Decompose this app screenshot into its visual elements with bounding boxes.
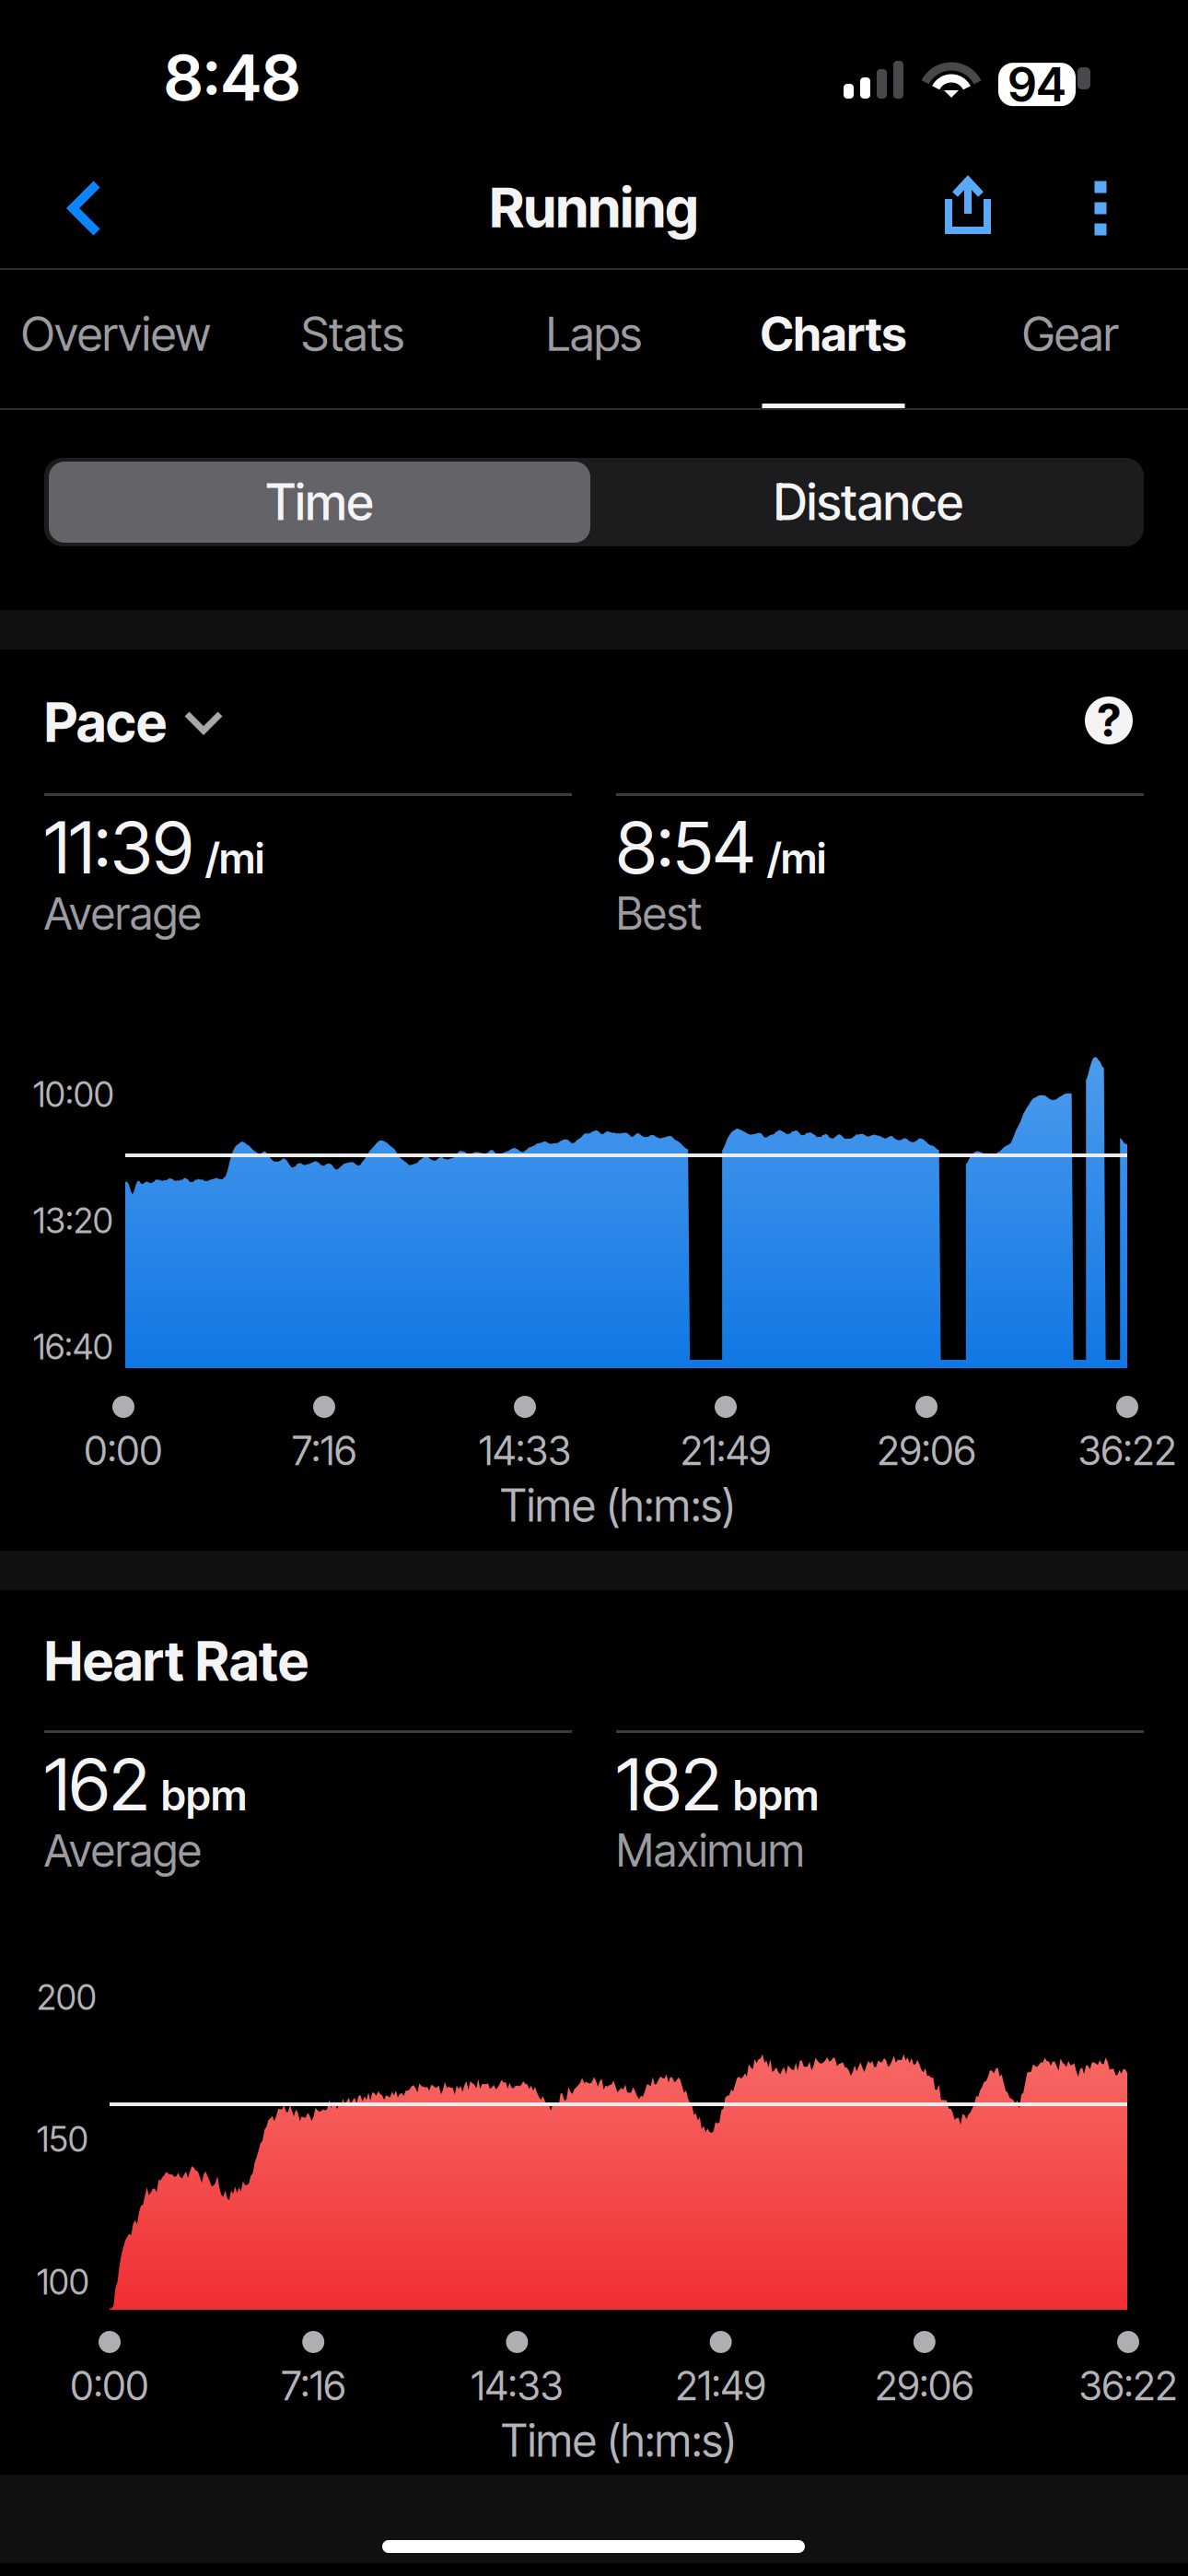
staticText: 150	[37, 2118, 88, 2160]
staticText: 10:00	[33, 1074, 114, 1115]
button[interactable]: About pace	[1085, 697, 1133, 744]
staticText: bpm	[733, 1770, 819, 1820]
staticText: ?	[1097, 694, 1120, 747]
staticText: 13:20	[33, 1200, 113, 1242]
staticText: 162	[44, 1741, 149, 1828]
staticText: Time	[266, 472, 373, 532]
button[interactable]: More options	[1044, 153, 1157, 263]
staticText: 200	[37, 1977, 97, 2018]
staticText: Maximum	[616, 1824, 805, 1877]
staticText: 8:48	[164, 39, 300, 116]
staticText: 7:16	[292, 1427, 356, 1475]
staticText: 21:49	[681, 1427, 771, 1475]
button[interactable]: Back	[28, 153, 144, 263]
staticText: 29:06	[877, 1427, 976, 1475]
staticText: Heart Rate	[44, 1628, 309, 1694]
button[interactable]: Laps	[473, 270, 715, 410]
staticText: 14:33	[471, 2362, 563, 2410]
staticText: Time (h:m:s)	[501, 2414, 737, 2467]
staticText: 0:00	[84, 1427, 163, 1475]
staticText: Laps	[546, 306, 642, 362]
staticText: Running	[489, 174, 699, 241]
staticText: Charts	[760, 306, 907, 362]
staticText: Stats	[301, 306, 404, 362]
button[interactable]: Charts	[715, 270, 952, 410]
staticText: Time (h:m:s)	[500, 1479, 736, 1532]
button[interactable]: Gear	[952, 270, 1188, 410]
staticText: 29:06	[875, 2362, 974, 2410]
staticText: Gear	[1022, 306, 1118, 362]
staticText: 94	[1008, 56, 1066, 113]
staticText: 21:49	[676, 2362, 766, 2410]
staticText: 0:00	[70, 2362, 149, 2410]
staticText: Pace	[44, 690, 167, 755]
staticText: Average	[44, 887, 202, 940]
staticText: Best	[616, 887, 702, 940]
button[interactable]: Overview	[0, 270, 232, 410]
staticText: 36:22	[1078, 1427, 1176, 1475]
staticText: 14:33	[479, 1427, 571, 1475]
staticText: /mi	[205, 833, 264, 883]
staticText: 36:22	[1079, 2362, 1177, 2410]
staticText: 7:16	[281, 2362, 346, 2410]
button[interactable]: Pace	[44, 688, 431, 756]
button[interactable]: Distance	[594, 458, 1143, 546]
staticText: Overview	[21, 306, 211, 362]
button[interactable]: Time	[49, 462, 590, 543]
staticText: 16:40	[33, 1326, 113, 1368]
staticText: 8:54	[616, 804, 755, 891]
staticText: Average	[44, 1824, 202, 1877]
staticText: /mi	[767, 833, 826, 883]
staticText: 100	[37, 2261, 89, 2303]
staticText: 11:39	[44, 804, 193, 891]
button[interactable]: Share	[912, 149, 1024, 260]
staticText: 182	[616, 1741, 721, 1828]
staticText: bpm	[161, 1770, 247, 1820]
button[interactable]: Stats	[232, 270, 473, 410]
staticText: Distance	[774, 472, 963, 532]
